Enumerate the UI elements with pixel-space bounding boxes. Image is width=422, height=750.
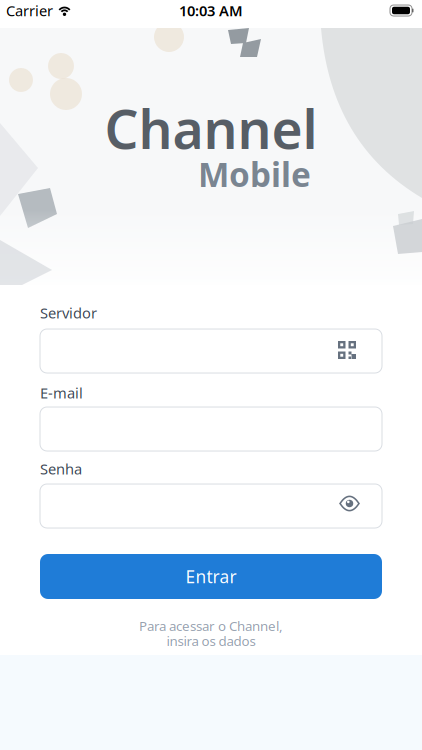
button[interactable]: Senha (40, 484, 382, 528)
button[interactable]: E-mail (40, 407, 382, 451)
staticText: Mobile (198, 152, 311, 196)
staticText: Servidor (40, 303, 97, 322)
staticText: Para acessar o Channel, (139, 617, 283, 635)
button[interactable]: Entrar (40, 554, 382, 599)
button[interactable]: Scan QR code (338, 342, 356, 360)
staticText: Channel (104, 93, 317, 164)
button[interactable]: Show password (339, 498, 360, 513)
button[interactable]: Servidor (40, 329, 382, 373)
staticText: 10:03 AM (179, 1, 243, 20)
staticText: insira os dados (166, 632, 255, 650)
staticText: Carrier (6, 1, 53, 20)
staticText: Senha (40, 459, 82, 478)
staticText: Entrar (185, 565, 236, 588)
staticText: E-mail (40, 383, 83, 402)
